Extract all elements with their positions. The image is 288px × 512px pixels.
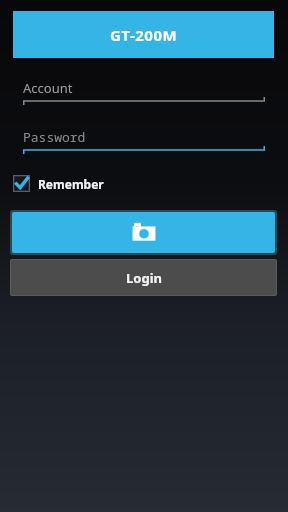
- button[interactable]: Remember: [13, 175, 104, 192]
- staticText: Account: [23, 79, 73, 97]
- button[interactable]: Account: [23, 79, 265, 106]
- staticText: Login: [126, 269, 162, 287]
- staticText: Remember: [38, 176, 104, 192]
- button[interactable]: Login: [10, 259, 277, 296]
- staticText: Password: [23, 128, 86, 146]
- button[interactable]: Password: [23, 128, 265, 155]
- button[interactable]: GT-200M: [13, 11, 274, 58]
- staticText: GT-200M: [110, 25, 178, 45]
- button[interactable]: Take photo: [12, 212, 275, 253]
